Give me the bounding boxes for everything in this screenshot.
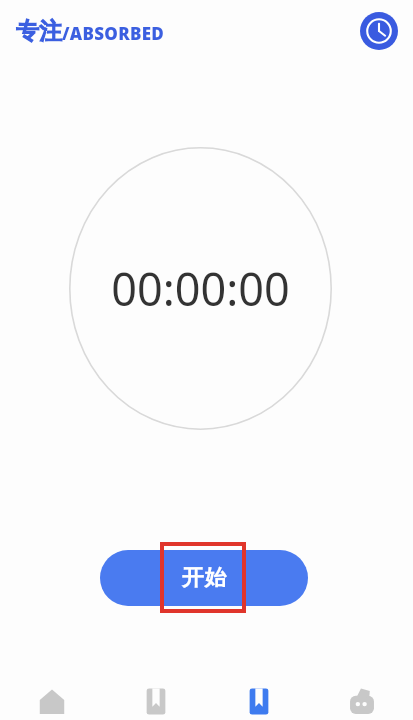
button[interactable]: Home <box>0 684 104 720</box>
staticText: 专注 <box>16 17 62 46</box>
button[interactable]: Focus <box>207 684 310 720</box>
staticText: 开始 <box>181 564 227 592</box>
button[interactable]: Profile <box>310 684 413 720</box>
button[interactable]: Timer history <box>360 12 398 50</box>
staticText: 00:00:00 <box>111 258 290 319</box>
staticText: /ABSORBED <box>62 22 165 45</box>
button[interactable]: 开始 <box>100 550 308 606</box>
button[interactable]: Notes <box>104 684 207 720</box>
